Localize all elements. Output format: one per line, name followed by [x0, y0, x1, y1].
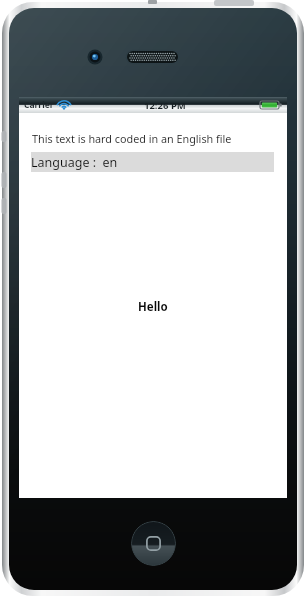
staticText: Hello	[138, 299, 168, 315]
button[interactable]: Home	[131, 521, 176, 566]
button[interactable]: Language : en	[31, 152, 274, 172]
staticText: Carrier	[24, 99, 54, 111]
staticText: This text is hard coded in an English fi…	[32, 131, 232, 146]
staticText: Language : en	[31, 154, 118, 171]
staticText: 12:26 PM	[144, 99, 186, 112]
